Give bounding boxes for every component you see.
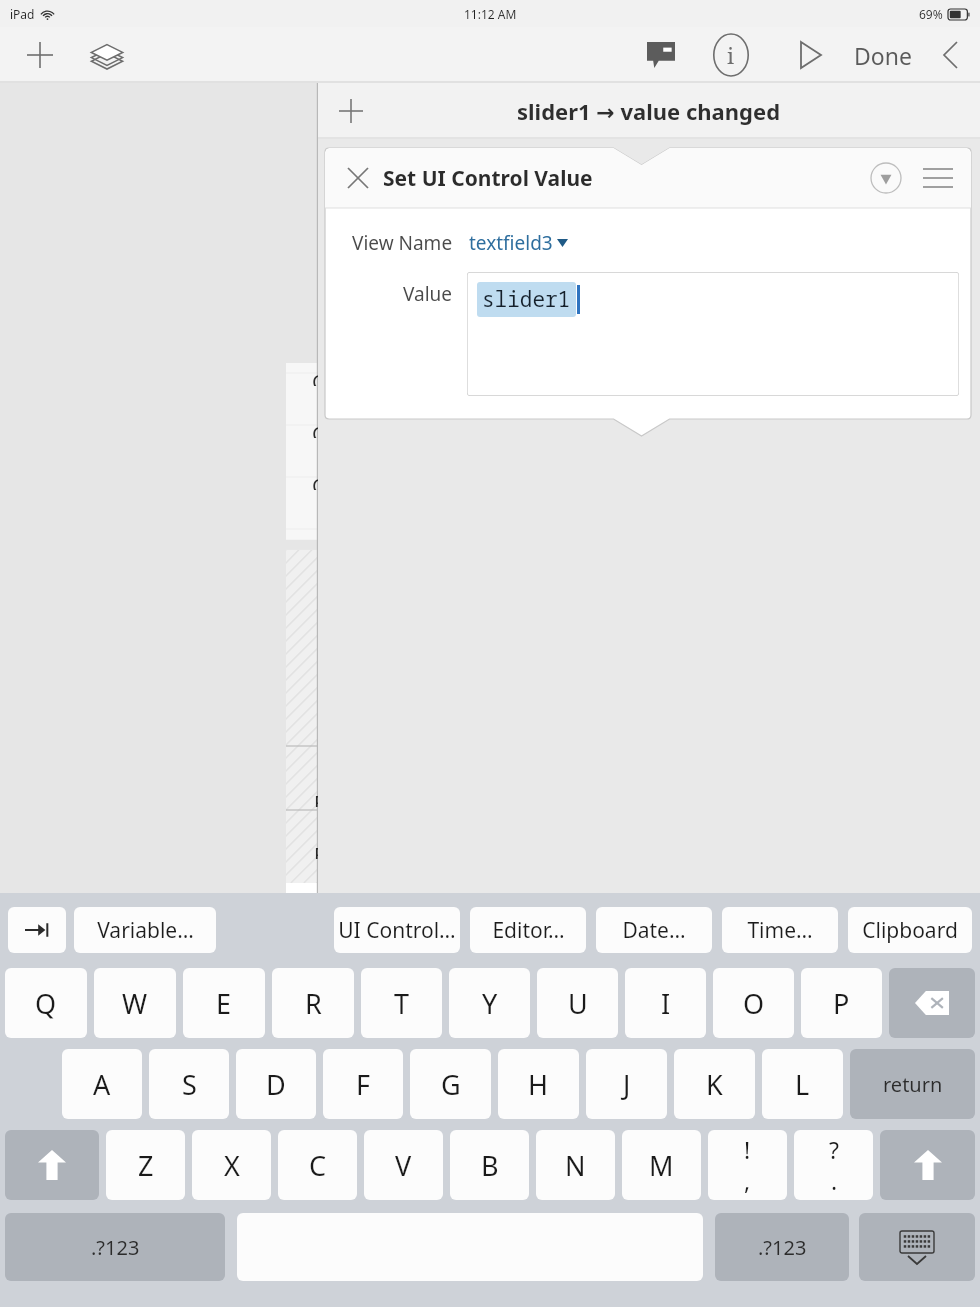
- button[interactable]: N: [536, 1130, 615, 1200]
- button[interactable]: D: [236, 1049, 316, 1119]
- staticText: G: [441, 1066, 461, 1103]
- staticText: .?123: [91, 1234, 140, 1261]
- staticText: 69%: [919, 6, 943, 22]
- button[interactable]: U: [537, 968, 618, 1038]
- staticText: D: [266, 1066, 286, 1103]
- button[interactable]: Collapse: [865, 157, 907, 199]
- button[interactable]: Back: [928, 33, 972, 77]
- button[interactable]: Editor…: [470, 907, 586, 953]
- staticText: Clipboard: [862, 916, 958, 945]
- button[interactable]: B: [450, 1130, 529, 1200]
- button[interactable]: Shift: [880, 1130, 975, 1200]
- staticText: C: [312, 420, 325, 438]
- staticText: iPad: [10, 6, 35, 22]
- button[interactable]: Console: [636, 30, 686, 80]
- staticText: U: [568, 985, 588, 1022]
- button[interactable]: W: [94, 968, 176, 1038]
- staticText: O: [743, 985, 765, 1022]
- staticText: View Name: [352, 230, 453, 256]
- staticText: Q: [35, 985, 57, 1022]
- staticText: .: [831, 1165, 838, 1196]
- staticText: V: [395, 1147, 412, 1184]
- button[interactable]: F: [323, 1049, 403, 1119]
- staticText: i: [727, 40, 735, 70]
- button[interactable]: I: [625, 968, 706, 1038]
- button[interactable]: T: [361, 968, 442, 1038]
- button[interactable]: Run: [786, 30, 836, 80]
- button[interactable]: Hide keyboard: [859, 1213, 975, 1281]
- button[interactable]: Tab: [8, 907, 66, 953]
- button[interactable]: S: [149, 1049, 229, 1119]
- staticText: Set UI Control Value: [383, 164, 593, 193]
- button[interactable]: J: [586, 1049, 667, 1119]
- button[interactable]: M: [622, 1130, 701, 1200]
- button[interactable]: K: [674, 1049, 755, 1119]
- button[interactable]: ?: [794, 1130, 873, 1200]
- staticText: I: [661, 985, 671, 1022]
- button[interactable]: Add block: [326, 86, 376, 136]
- staticText: R: [305, 985, 322, 1022]
- staticText: K: [706, 1066, 723, 1103]
- staticText: F: [314, 841, 325, 859]
- button[interactable]: O: [713, 968, 794, 1038]
- button[interactable]: Clipboard: [848, 907, 972, 953]
- staticText: slider1: [482, 285, 571, 314]
- staticText: textfield3: [469, 230, 553, 256]
- button[interactable]: UI Control…: [334, 907, 460, 953]
- staticText: !: [744, 1134, 751, 1165]
- button[interactable]: L: [762, 1049, 843, 1119]
- staticText: Date…: [622, 916, 686, 945]
- button[interactable]: C: [278, 1130, 357, 1200]
- staticText: Z: [138, 1147, 154, 1184]
- button[interactable]: Shift: [5, 1130, 99, 1200]
- staticText: Done: [854, 40, 912, 71]
- button[interactable]: return: [850, 1049, 975, 1119]
- staticText: return: [883, 1071, 943, 1098]
- staticText: 11:12 AM: [464, 6, 517, 22]
- button[interactable]: Time…: [722, 907, 838, 953]
- staticText: T: [394, 985, 410, 1022]
- staticText: .?123: [758, 1234, 807, 1261]
- staticText: N: [565, 1147, 586, 1184]
- button[interactable]: R: [272, 968, 354, 1038]
- button[interactable]: slider1: [467, 272, 959, 396]
- staticText: Value: [403, 281, 453, 307]
- button[interactable]: Date…: [596, 907, 712, 953]
- staticText: P: [833, 985, 850, 1022]
- button[interactable]: .?123: [715, 1213, 849, 1281]
- staticText: B: [481, 1147, 499, 1184]
- button[interactable]: Reorder: [917, 157, 959, 199]
- button[interactable]: Backspace: [889, 968, 975, 1038]
- staticText: L: [795, 1066, 810, 1103]
- staticText: C: [312, 472, 325, 490]
- button[interactable]: E: [183, 968, 265, 1038]
- button[interactable]: H: [498, 1049, 579, 1119]
- button[interactable]: X: [192, 1130, 271, 1200]
- button[interactable]: Layers: [84, 32, 130, 78]
- button[interactable]: G: [410, 1049, 491, 1119]
- button[interactable]: V: [364, 1130, 443, 1200]
- button[interactable]: A: [62, 1049, 142, 1119]
- button[interactable]: Y: [449, 968, 530, 1038]
- button[interactable]: !: [708, 1130, 787, 1200]
- button[interactable]: textfield3: [467, 226, 570, 260]
- button[interactable]: Done: [846, 34, 920, 77]
- staticText: A: [93, 1066, 111, 1103]
- staticText: M: [649, 1147, 674, 1184]
- staticText: Editor…: [492, 916, 565, 945]
- staticText: C: [309, 1147, 327, 1184]
- staticText: Time…: [747, 916, 813, 945]
- button[interactable]: P: [801, 968, 882, 1038]
- button[interactable]: Z: [106, 1130, 185, 1200]
- button[interactable]: Variable…: [74, 907, 216, 953]
- staticText: Y: [482, 985, 498, 1022]
- button[interactable]: .?123: [5, 1213, 225, 1281]
- button[interactable]: Close block: [339, 159, 377, 197]
- staticText: J: [623, 1066, 631, 1103]
- button[interactable]: Info: [706, 30, 756, 80]
- button[interactable]: Q: [5, 968, 87, 1038]
- button[interactable]: Add: [18, 33, 62, 77]
- staticText: F: [356, 1066, 371, 1103]
- staticText: W: [122, 985, 148, 1022]
